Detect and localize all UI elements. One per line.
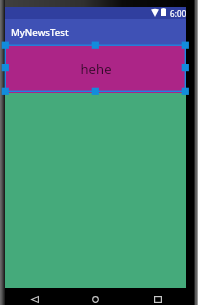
button[interactable]: hehe bbox=[5, 45, 186, 93]
staticText: hehe bbox=[80, 60, 112, 78]
button[interactable]: Home bbox=[87, 293, 103, 305]
button[interactable]: MyNewsTest bbox=[5, 19, 186, 45]
button[interactable]: Back bbox=[27, 293, 43, 305]
staticText: 6:00 bbox=[170, 8, 187, 19]
staticText: MyNewsTest bbox=[11, 26, 69, 39]
button[interactable]: Recent apps bbox=[150, 293, 166, 305]
